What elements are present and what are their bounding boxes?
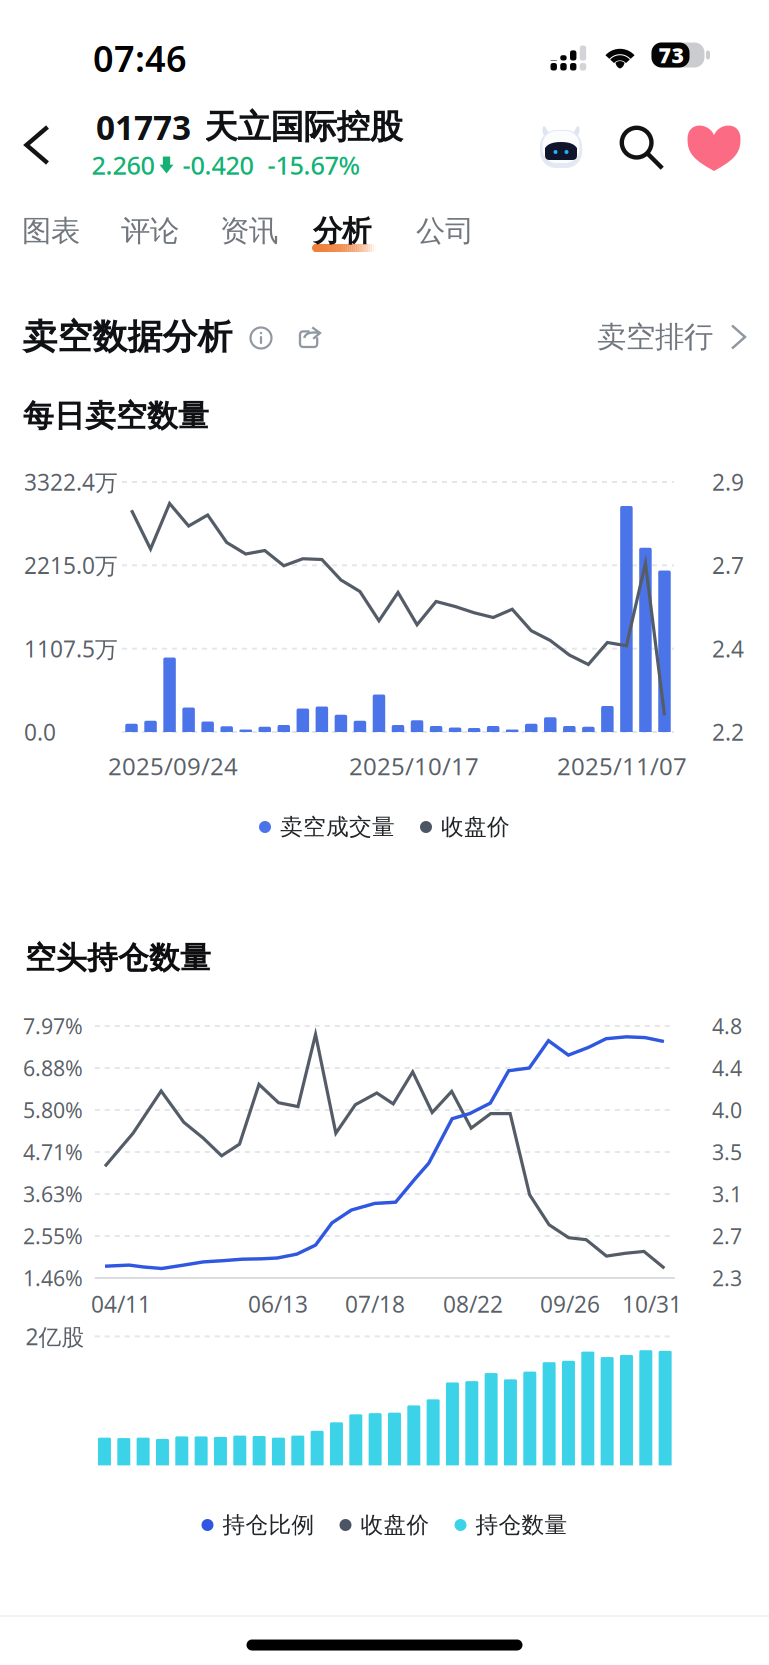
staticText: 07:46 — [93, 34, 187, 82]
button[interactable]: 评论 — [90, 193, 210, 269]
button[interactable]: Search — [606, 112, 677, 183]
staticText: 1107.5万 — [24, 634, 118, 664]
button[interactable]: 公司 — [385, 193, 505, 269]
staticText: 73 — [658, 41, 684, 69]
button[interactable]: Back — [4, 105, 69, 185]
staticText: 7.97% — [23, 1012, 83, 1040]
staticText: 3.63% — [23, 1180, 83, 1208]
staticText: 空头持仓数量 — [25, 939, 211, 977]
staticText: 10/31 — [622, 1289, 682, 1319]
staticText: 天立国际控股 — [204, 106, 402, 147]
staticText: 评论 — [121, 213, 179, 249]
staticText: 4.0 — [712, 1096, 742, 1124]
staticText: 2.7 — [712, 1222, 742, 1250]
staticText: 09/26 — [540, 1289, 600, 1319]
staticText: 持仓数量 — [475, 1511, 567, 1539]
staticText: 收盘价 — [441, 813, 510, 841]
staticText: 2.7 — [712, 550, 744, 580]
staticText: 公司 — [416, 213, 474, 249]
staticText: 2.9 — [712, 467, 744, 497]
button[interactable]: 分析 — [282, 193, 402, 269]
staticText: 3322.4万 — [24, 467, 118, 497]
staticText: 卖空排行 — [597, 319, 713, 355]
staticText: 分析 — [313, 213, 371, 249]
staticText: 2.55% — [23, 1222, 83, 1250]
staticText: 2025/10/17 — [349, 750, 479, 782]
staticText: 2.4 — [712, 634, 744, 664]
staticText: 4.4 — [712, 1054, 742, 1082]
staticText: 06/13 — [248, 1289, 308, 1319]
staticText: 2亿股 — [25, 1321, 84, 1351]
staticText: 卖空数据分析 — [22, 316, 232, 358]
staticText: 收盘价 — [360, 1511, 429, 1539]
staticText: 5.80% — [23, 1096, 83, 1124]
staticText: 3.5 — [712, 1138, 742, 1166]
staticText: 3.1 — [712, 1180, 742, 1208]
button[interactable]: AI assistant — [537, 123, 585, 171]
button[interactable]: 资讯 — [189, 193, 309, 269]
staticText: 08/22 — [443, 1289, 503, 1319]
button[interactable]: 卖空排行 — [597, 307, 745, 367]
staticText: 04/11 — [91, 1289, 151, 1319]
staticText: 2215.0万 — [24, 550, 118, 580]
staticText: 2025/11/07 — [557, 750, 687, 782]
staticText: 卖空成交量 — [280, 813, 395, 841]
staticText: 1.46% — [23, 1264, 83, 1292]
button[interactable]: Favourite — [673, 111, 754, 185]
button[interactable]: Share — [288, 315, 332, 359]
staticText: 01773 — [96, 105, 191, 149]
staticText: 6.88% — [23, 1054, 83, 1082]
staticText: 4.71% — [23, 1138, 83, 1166]
staticText: 每日卖空数量 — [23, 397, 209, 435]
button[interactable]: 图表 — [0, 193, 111, 269]
button[interactable]: Info — [239, 316, 282, 359]
staticText: 2.3 — [712, 1264, 742, 1292]
staticText: 4.8 — [712, 1012, 742, 1040]
staticText: -0.420 -15.67% — [182, 148, 360, 182]
staticText: 资讯 — [220, 213, 278, 249]
staticText: 图表 — [22, 213, 80, 249]
staticText: 2025/09/24 — [108, 750, 238, 782]
staticText: 0.0 — [24, 717, 56, 747]
staticText: 07/18 — [345, 1289, 405, 1319]
staticText: 持仓比例 — [222, 1511, 314, 1539]
staticText: 2.260 — [91, 148, 154, 182]
staticText: 2.2 — [712, 717, 744, 747]
